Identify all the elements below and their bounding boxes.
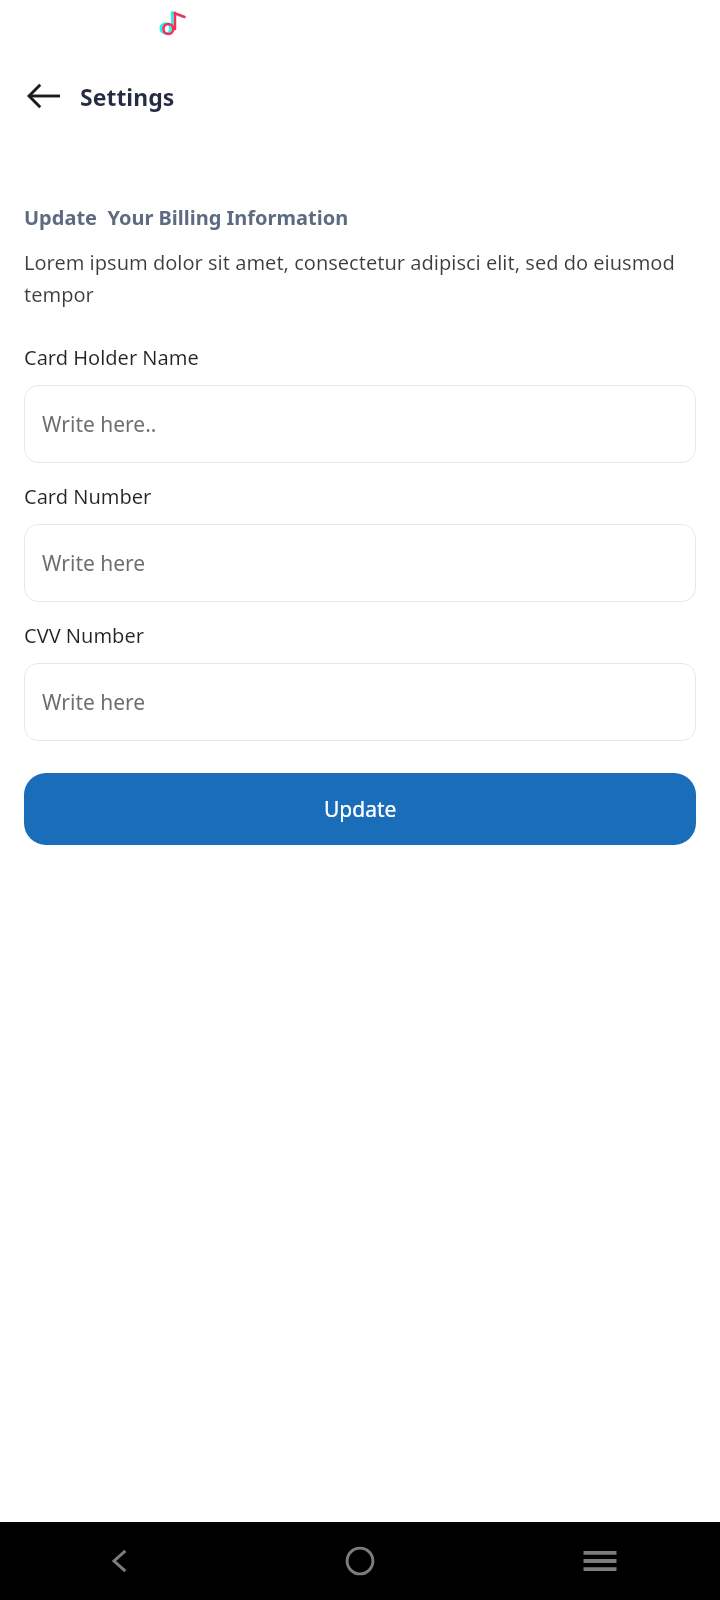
button[interactable]: Back (0, 1522, 240, 1600)
staticText: Update (324, 795, 397, 824)
staticText: Write here.. (42, 410, 157, 439)
button[interactable]: Back (20, 72, 68, 120)
button[interactable]: Home (240, 1522, 480, 1600)
staticText: Write here (42, 549, 146, 578)
staticText: Write here (42, 688, 146, 717)
staticText: Settings (80, 81, 175, 112)
button[interactable]: Write here (24, 524, 696, 602)
staticText: Update Your Billing Information (24, 204, 349, 231)
button[interactable]: Write here.. (24, 385, 696, 463)
staticText: CVV Number (24, 622, 144, 649)
button[interactable]: Write here (24, 663, 696, 741)
button[interactable]: Update (24, 773, 696, 845)
staticText: Card Number (24, 483, 152, 510)
staticText: Lorem ipsum dolor sit amet, consectetur … (24, 249, 696, 308)
other: TikTok (155, 8, 185, 38)
button[interactable]: Recent apps (480, 1522, 720, 1600)
staticText: Card Holder Name (24, 344, 199, 371)
